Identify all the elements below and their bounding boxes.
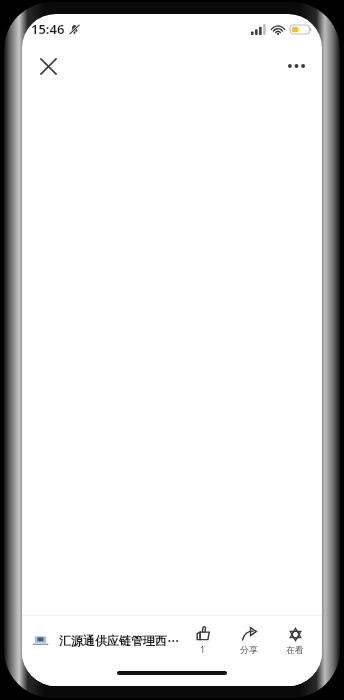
staticText: 汇源通供应链管理西安… (59, 633, 182, 648)
button[interactable]: 汇源通供应链管理西安… (32, 633, 182, 648)
staticText: 在看 (286, 644, 304, 655)
button[interactable]: Close (28, 46, 68, 86)
button[interactable]: Wow (274, 616, 316, 664)
staticText: 15:46 (31, 20, 65, 38)
button[interactable]: Share (228, 616, 270, 664)
staticText: 分享 (240, 644, 258, 655)
button[interactable]: More options (276, 46, 316, 86)
button[interactable]: Like (182, 616, 224, 664)
staticText: 1 (200, 643, 206, 655)
